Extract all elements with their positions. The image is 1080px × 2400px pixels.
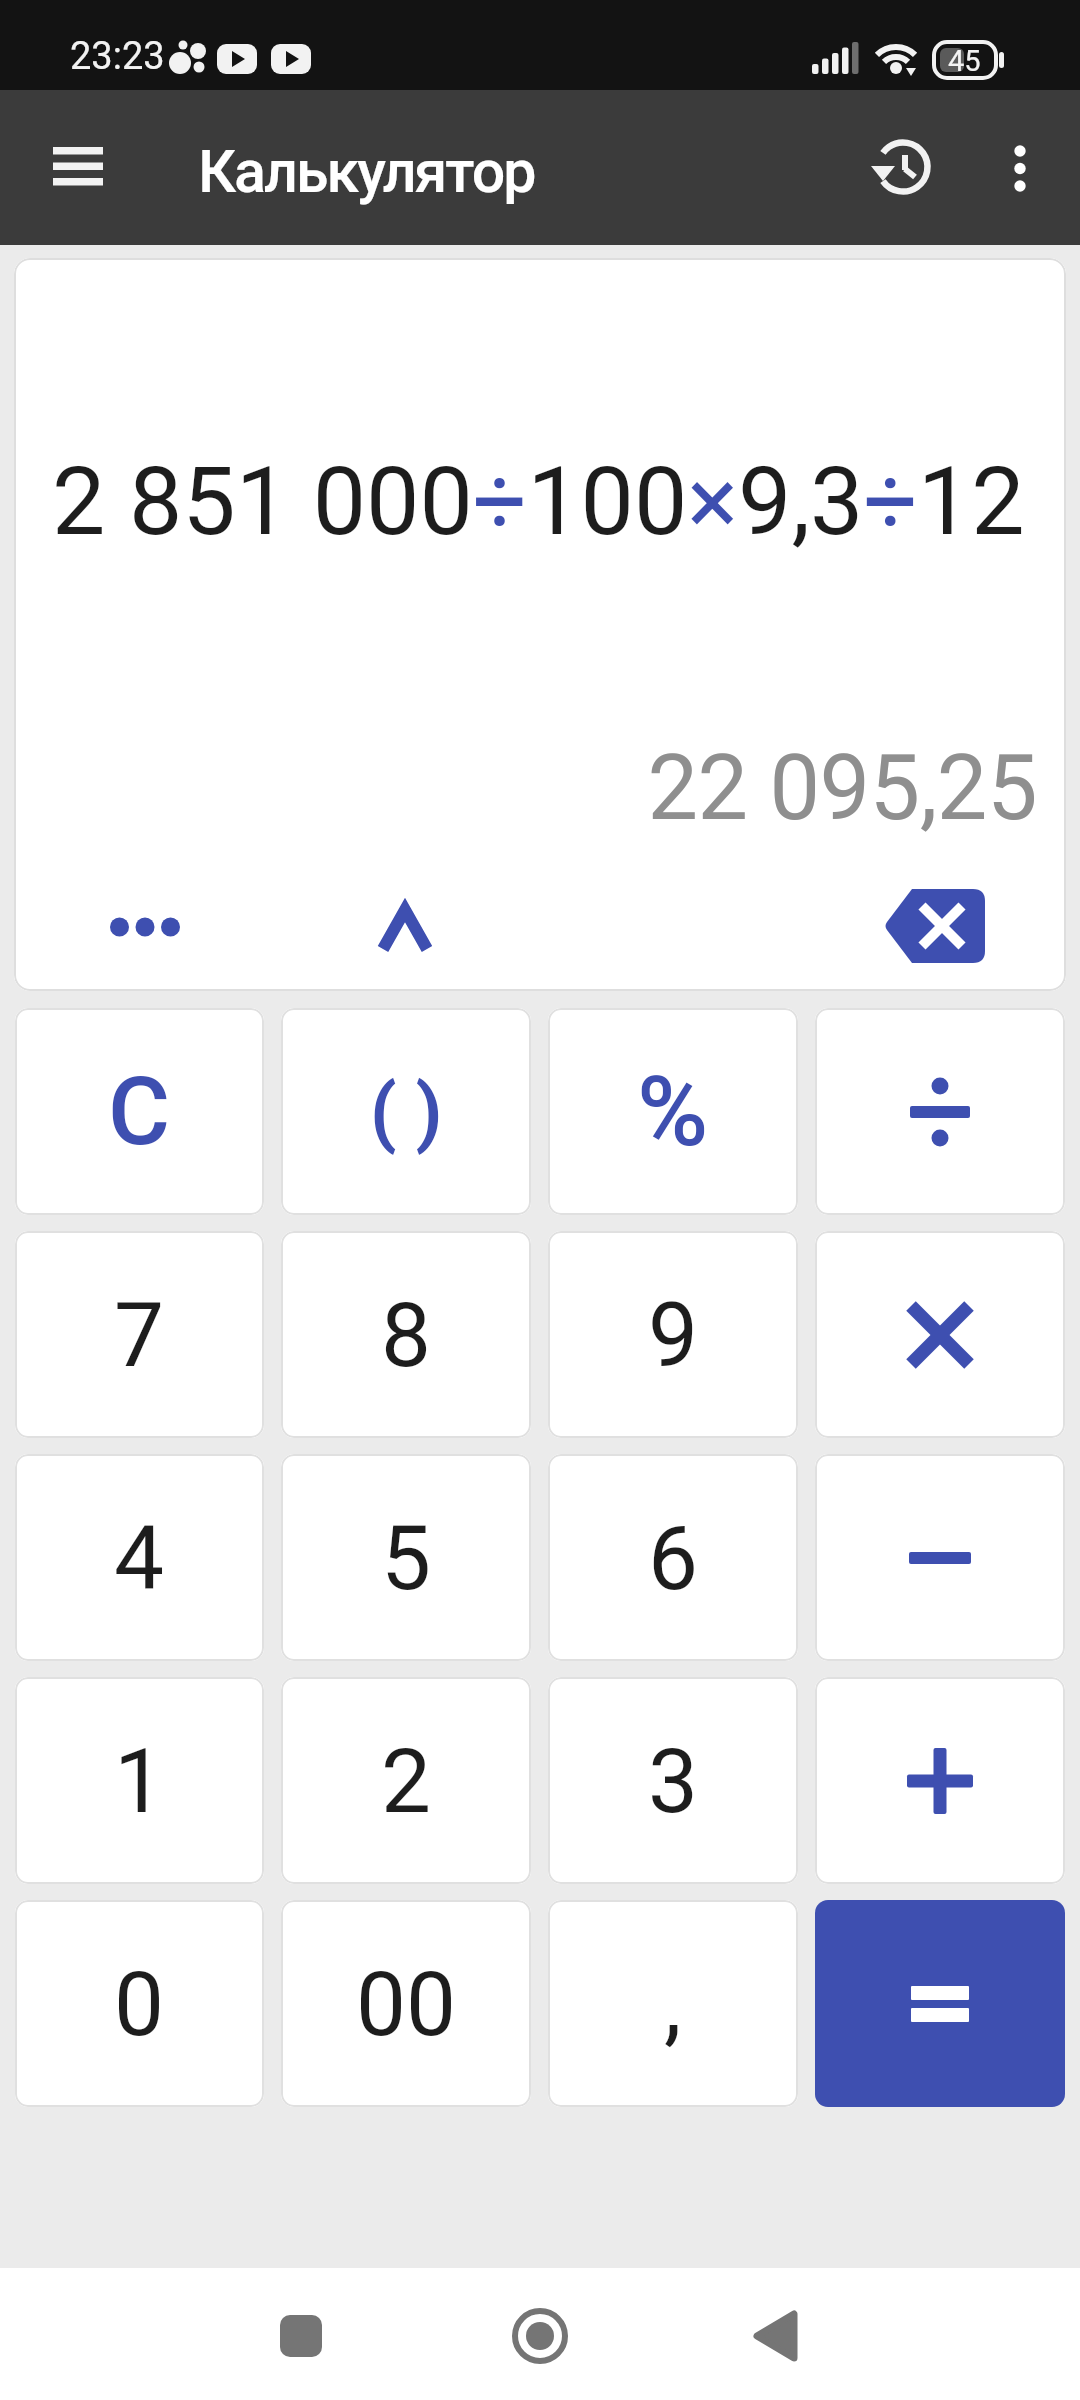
staticText: 8 — [381, 1283, 432, 1387]
staticText: 22 095,25 — [14, 736, 1037, 841]
staticText: C — [108, 1056, 171, 1167]
staticText: % — [637, 1055, 709, 1169]
button[interactable]: 3 — [548, 1677, 798, 1884]
staticText: 45 — [948, 44, 981, 78]
staticText: 2 — [381, 1729, 432, 1833]
button[interactable]: , — [548, 1900, 798, 2107]
button[interactable] — [815, 1231, 1065, 1438]
button[interactable] — [335, 877, 475, 977]
button[interactable]: 6 — [548, 1454, 798, 1661]
staticText: 3 — [648, 1729, 699, 1833]
button[interactable]: 1 — [15, 1677, 264, 1884]
staticText: 23:23 — [70, 34, 165, 79]
button[interactable]: C — [15, 1008, 264, 1215]
button[interactable]: ( ) — [281, 1008, 531, 1215]
button[interactable]: 8 — [281, 1231, 531, 1438]
button[interactable] — [815, 1677, 1065, 1884]
button[interactable] — [860, 125, 946, 211]
button[interactable]: 2 — [281, 1677, 531, 1884]
staticText: Калькулятор — [198, 137, 535, 206]
button[interactable] — [38, 139, 118, 194]
button[interactable]: % — [548, 1008, 798, 1215]
button[interactable] — [815, 1008, 1065, 1215]
staticText: 6 — [648, 1506, 699, 1610]
staticText: 0 — [114, 1952, 165, 2056]
staticText: 1 — [114, 1729, 165, 1833]
button[interactable]: 5 — [281, 1454, 531, 1661]
staticText: 7 — [114, 1283, 165, 1387]
button[interactable] — [726, 2286, 826, 2386]
staticText: 9 — [648, 1283, 699, 1387]
button[interactable]: 9 — [548, 1231, 798, 1438]
staticText: 5 — [381, 1506, 432, 1610]
button[interactable]: 4 — [15, 1454, 264, 1661]
staticText: 2 851 000÷100×9,3÷12 — [52, 446, 1025, 557]
button[interactable]: 0 — [15, 1900, 264, 2107]
staticText: ( ) — [370, 1067, 443, 1156]
staticText: , — [664, 1952, 682, 2056]
button[interactable] — [815, 1454, 1065, 1661]
button[interactable] — [75, 877, 215, 977]
staticText: 00 — [356, 1952, 457, 2056]
button[interactable] — [985, 125, 1055, 211]
button[interactable]: 7 — [15, 1231, 264, 1438]
button[interactable] — [490, 2286, 590, 2386]
button[interactable] — [864, 872, 1006, 980]
button[interactable]: 00 — [281, 1900, 531, 2107]
button[interactable] — [815, 1900, 1065, 2107]
staticText: 4 — [114, 1506, 165, 1610]
button[interactable] — [251, 2286, 351, 2386]
